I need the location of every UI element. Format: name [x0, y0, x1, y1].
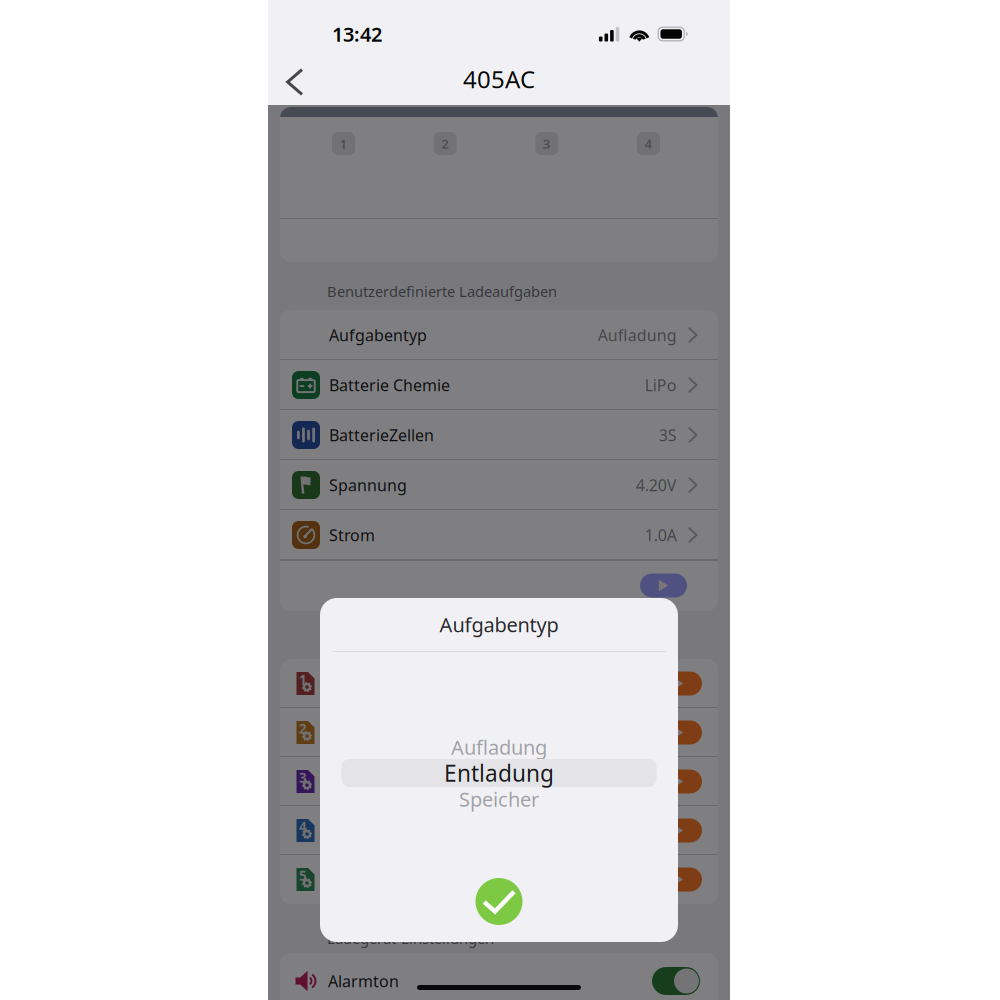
staticText: Benutzerdefinierte Ladeaufgaben — [327, 281, 557, 301]
staticText: Aufladung — [598, 324, 677, 346]
staticText: 4.20V — [636, 474, 677, 496]
staticText: 2 — [441, 135, 449, 152]
staticText: Aufgabentyp — [439, 611, 558, 638]
staticText: 5 — [299, 867, 307, 884]
button[interactable]: 2 — [434, 132, 457, 155]
staticText: Spannung — [329, 474, 407, 496]
staticText: 13:42 — [332, 21, 382, 47]
button[interactable]: Aufgabentyp — [280, 310, 718, 360]
staticText: Aufgabentyp — [329, 324, 427, 346]
button[interactable]: 4 — [280, 806, 718, 855]
staticText: 4 — [644, 135, 652, 152]
staticText: LiPo — [645, 374, 677, 396]
staticText: 3 — [299, 769, 307, 786]
staticText: Aufgabe 3 — [329, 771, 406, 792]
button[interactable]: Back — [286, 53, 330, 105]
button[interactable]: 3 — [280, 757, 718, 806]
button[interactable]: BatterieZellen — [280, 410, 718, 460]
button[interactable]: 3 — [535, 132, 558, 155]
staticText: Aufladung — [451, 734, 547, 760]
staticText: Entladung — [444, 758, 554, 788]
button[interactable]: 1 — [280, 659, 718, 708]
staticText: Alarmton — [328, 970, 399, 992]
button[interactable]: 4 — [637, 132, 660, 155]
staticText: Strom — [329, 524, 375, 546]
staticText: Speicher — [459, 786, 539, 812]
staticText: Batterie Chemie — [329, 374, 450, 396]
staticText: BatterieZellen — [329, 424, 434, 446]
staticText: 2 — [299, 720, 307, 737]
button[interactable]: 2 — [280, 708, 718, 757]
staticText: 405AC — [463, 63, 535, 95]
staticText: 1.0A — [645, 524, 677, 546]
button[interactable]: Alarmton — [280, 956, 718, 1000]
staticText: Ladegerät-Einstellungen — [327, 928, 494, 948]
staticText: 1 — [299, 671, 307, 688]
button[interactable]: 5 — [280, 855, 718, 904]
staticText: 3 — [543, 135, 551, 152]
staticText: 3S — [659, 424, 677, 446]
button[interactable]: Confirm — [475, 878, 522, 925]
button[interactable]: Batterie Chemie — [280, 360, 718, 410]
button[interactable]: 1 — [332, 132, 355, 155]
button[interactable]: Start charging task — [640, 573, 687, 597]
button[interactable]: Spannung — [280, 460, 718, 510]
staticText: 4 — [299, 818, 307, 835]
button[interactable]: Strom — [280, 510, 718, 560]
staticText: 1 — [339, 135, 347, 152]
